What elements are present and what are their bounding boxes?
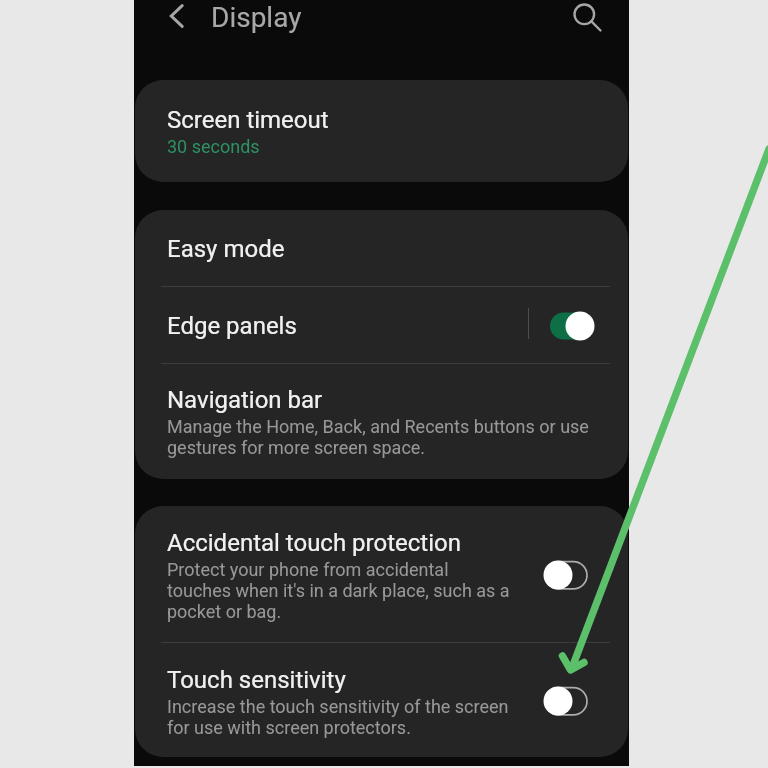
button[interactable]: Navigate up	[151, 0, 203, 42]
staticText: Manage the Home, Back, and Recents butto…	[167, 416, 607, 458]
button[interactable]: Touch sensitivity, off	[543, 685, 589, 716]
button[interactable]: Accidental touch protection	[135, 506, 628, 643]
staticText: Easy mode	[167, 235, 285, 263]
button[interactable]: Navigation bar	[135, 364, 628, 479]
staticText: Screen timeout	[167, 106, 329, 134]
button[interactable]: Touch sensitivity	[135, 643, 628, 757]
button[interactable]: Edge panels, on	[549, 310, 595, 341]
staticText: Display	[211, 1, 302, 34]
staticText: Navigation bar	[167, 386, 323, 414]
staticText: Accidental touch protection	[167, 529, 461, 557]
button[interactable]: Easy mode	[135, 210, 628, 287]
staticText: Increase the touch sensitivity of the sc…	[167, 696, 513, 738]
staticText: Protect your phone from accidental touch…	[167, 559, 513, 622]
staticText: Touch sensitivity	[167, 666, 346, 694]
button[interactable]: Accidental touch protection, off	[543, 559, 589, 590]
staticText: 30 seconds	[167, 136, 260, 157]
button[interactable]: Search	[561, 0, 613, 43]
button[interactable]: Screen timeout	[135, 80, 628, 182]
button[interactable]: Edge panels	[135, 287, 628, 364]
staticText: Edge panels	[167, 312, 297, 340]
